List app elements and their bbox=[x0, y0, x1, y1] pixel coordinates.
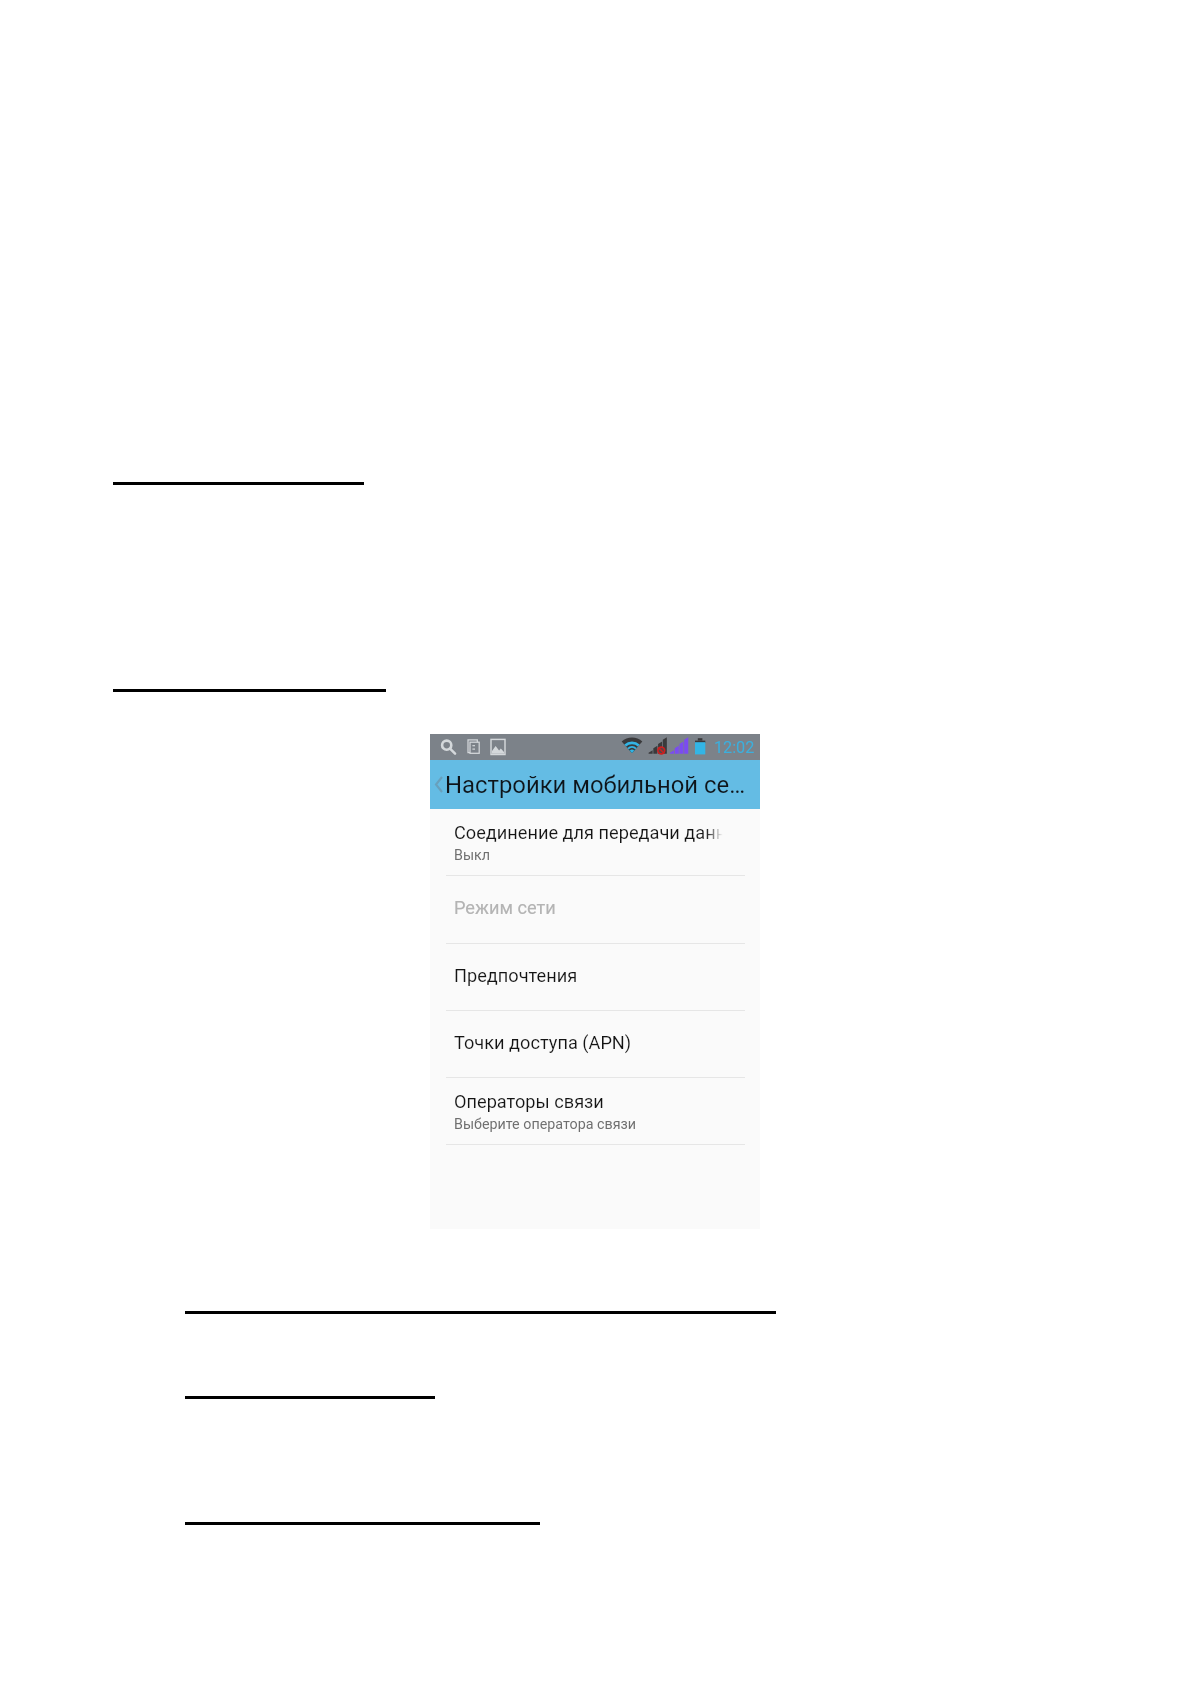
button[interactable]: Режим сети bbox=[430, 876, 760, 944]
button[interactable]: Точки доступа (APN) bbox=[430, 1011, 760, 1078]
staticText: Точки доступа (APN) bbox=[454, 1032, 632, 1053]
button[interactable]: Предпочтения bbox=[430, 944, 760, 1011]
staticText: Выкл bbox=[454, 847, 491, 864]
staticText: Предпочтения bbox=[454, 965, 578, 986]
staticText: 12:02 bbox=[714, 738, 755, 757]
button[interactable]: Back bbox=[430, 760, 760, 809]
staticText: Режим сети bbox=[454, 897, 556, 918]
staticText: Выберите оператора связи bbox=[454, 1116, 637, 1133]
other: Back bbox=[432, 760, 446, 809]
staticText: Настройки мобильной се… bbox=[445, 771, 746, 799]
button[interactable]: Соединение для передачи данных bbox=[430, 809, 760, 876]
staticText: Операторы связи bbox=[454, 1091, 604, 1112]
button[interactable]: Операторы связи bbox=[430, 1078, 760, 1145]
staticText: Соединение для передачи данных bbox=[454, 822, 750, 843]
